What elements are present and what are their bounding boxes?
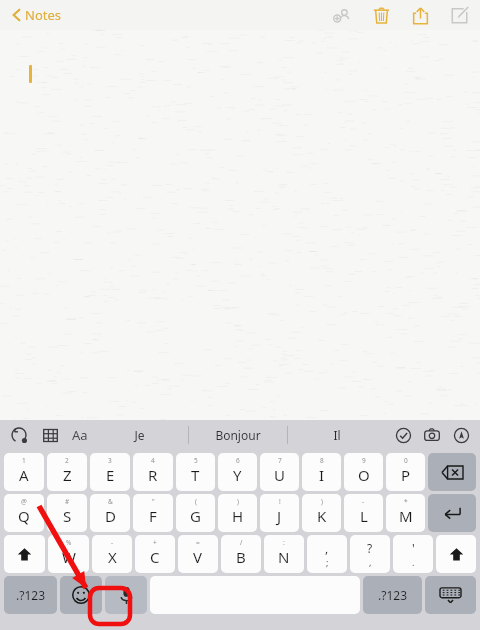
button[interactable]: Notes [10, 3, 63, 27]
staticText: 9 [362, 456, 366, 465]
staticText: ! [279, 497, 281, 506]
staticText: 5 [194, 456, 198, 465]
staticText: .?123 [16, 587, 46, 603]
button[interactable]: : [264, 535, 304, 573]
button[interactable]: 3 [90, 453, 130, 491]
staticText: = [196, 538, 200, 547]
staticText: 6 [236, 456, 240, 465]
button[interactable]: Table [39, 424, 61, 446]
staticText: D [105, 506, 116, 526]
staticText: + [153, 538, 157, 547]
staticText: B [236, 547, 246, 567]
button[interactable]: Shift [436, 535, 476, 573]
staticText: A [19, 465, 29, 485]
staticText: .?123 [378, 587, 408, 603]
button[interactable]: - [344, 494, 383, 532]
staticText: J [277, 506, 282, 526]
button[interactable]: Emoji [60, 576, 102, 614]
button[interactable]: Share [407, 2, 433, 28]
button[interactable]: # [47, 494, 87, 532]
staticText: , [369, 556, 372, 568]
button[interactable]: 8 [302, 453, 341, 491]
staticText: V [193, 547, 203, 567]
staticText: N [278, 547, 290, 567]
button[interactable]: / [221, 535, 261, 573]
staticText: / [240, 538, 243, 547]
staticText: X [108, 547, 117, 567]
staticText: 1 [22, 456, 26, 465]
button[interactable]: Return [428, 494, 476, 532]
button[interactable]: Il [288, 420, 386, 450]
button[interactable]: .?123 [363, 576, 422, 614]
button[interactable]: Dictation [105, 576, 147, 614]
staticText: S [63, 506, 72, 526]
staticText: M [399, 506, 413, 526]
staticText: Il [333, 427, 341, 443]
button[interactable]: 9 [344, 453, 383, 491]
staticText: 3 [108, 456, 112, 465]
staticText: Bonjour [215, 427, 261, 443]
button[interactable]: Hide keyboard [425, 576, 476, 614]
staticText: - [111, 538, 114, 547]
staticText: H [232, 506, 244, 526]
button[interactable]: & [90, 494, 130, 532]
staticText: U [274, 465, 285, 485]
button[interactable]: Backspace [428, 453, 476, 491]
button[interactable]: 6 [218, 453, 257, 491]
button[interactable]: Je [90, 420, 188, 450]
button[interactable]: + [135, 535, 175, 573]
staticText: 4 [151, 456, 155, 465]
button[interactable]: " [133, 494, 173, 532]
staticText: Q [18, 506, 30, 526]
staticText: C [150, 547, 160, 567]
button[interactable]: * [386, 494, 425, 532]
staticText: # [65, 497, 70, 506]
button[interactable]: 0 [386, 453, 425, 491]
button[interactable]: 2 [47, 453, 87, 491]
button[interactable]: ( [176, 494, 215, 532]
button[interactable]: ? [350, 535, 390, 573]
button[interactable]: ) [218, 494, 257, 532]
button[interactable]: .?123 [4, 576, 57, 614]
staticText: P [401, 465, 411, 485]
staticText: & [108, 497, 113, 506]
button[interactable]: = [178, 535, 218, 573]
button[interactable]: Markup [450, 424, 472, 446]
button[interactable]: ! [260, 494, 299, 532]
button[interactable]: - [92, 535, 132, 573]
staticText: Z [63, 465, 72, 485]
button[interactable]: 4 [133, 453, 173, 491]
button[interactable]: % [48, 535, 89, 573]
button[interactable]: ) [302, 494, 341, 532]
button[interactable]: @ [4, 494, 44, 532]
staticText: ) [321, 497, 323, 506]
button[interactable]: Delete [368, 2, 394, 28]
button[interactable]: 7 [260, 453, 299, 491]
button[interactable]: New note [446, 2, 472, 28]
button[interactable]: Aa [70, 426, 90, 444]
button[interactable]: ' [393, 535, 433, 573]
button[interactable]: 1 [4, 453, 44, 491]
button[interactable]: , [307, 535, 347, 573]
staticText: 7 [278, 456, 282, 465]
staticText: % [66, 538, 72, 547]
button[interactable]: 5 [176, 453, 215, 491]
staticText: 0 [404, 456, 408, 465]
button[interactable]: Checklist [392, 424, 414, 446]
staticText: K [317, 506, 327, 526]
button[interactable]: Undo [8, 424, 30, 446]
staticText: @ [21, 497, 27, 506]
staticText: 8 [320, 456, 324, 465]
staticText: Aa [72, 426, 88, 444]
button[interactable]: Add people [329, 2, 355, 28]
staticText: ) [237, 497, 239, 506]
staticText: I [319, 465, 325, 485]
staticText: Notes [25, 6, 61, 24]
staticText: R [148, 465, 158, 485]
button[interactable]: Bonjour [189, 420, 287, 450]
button[interactable]: Camera [421, 424, 443, 446]
button[interactable]: Shift [4, 535, 45, 573]
staticText: ; [326, 556, 329, 568]
staticText: , [325, 540, 329, 556]
